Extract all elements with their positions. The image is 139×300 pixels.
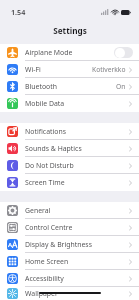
staticText: Mobile Data [25,99,65,108]
staticText: 1.54 [11,7,26,17]
staticText: Screen Time [25,178,65,187]
button[interactable]: Toggle Airplane Mode [114,47,133,58]
button[interactable]: Display & Brightness [0,236,139,253]
staticText: Sounds & Haptics [25,144,82,153]
button[interactable]: General [0,202,139,219]
button[interactable]: Control Centre [0,219,139,236]
staticText: Display & Brightness [25,240,92,249]
staticText: Settings [53,25,87,36]
button[interactable]: Wallpaper [0,287,139,300]
button[interactable]: Accessibility [0,270,139,287]
button[interactable]: Notifications [0,123,139,140]
button[interactable]: Airplane Mode [0,44,139,61]
staticText: Airplane Mode [25,48,73,57]
staticText: Bluetooth [25,82,57,91]
button[interactable]: Mobile Data [0,95,139,112]
staticText: Do Not Disturb [25,161,74,170]
staticText: Control Centre [25,223,73,232]
staticText: General [25,206,51,215]
button[interactable]: Wi-Fi [0,61,139,78]
staticText: Wallpaper [25,289,58,298]
staticText: Accessibility [25,274,64,283]
staticText: Notifications [25,127,66,136]
staticText: Home Screen [25,257,69,266]
button[interactable]: Screen Time [0,174,139,191]
staticText: Wi-Fi [25,65,41,74]
button[interactable]: Bluetooth [0,78,139,95]
staticText: On [116,82,126,91]
button[interactable]: Sounds & Haptics [0,140,139,157]
button[interactable]: Home Screen [0,253,139,270]
staticText: Kotiverkko [92,65,126,74]
button[interactable]: Do Not Disturb [0,157,139,174]
